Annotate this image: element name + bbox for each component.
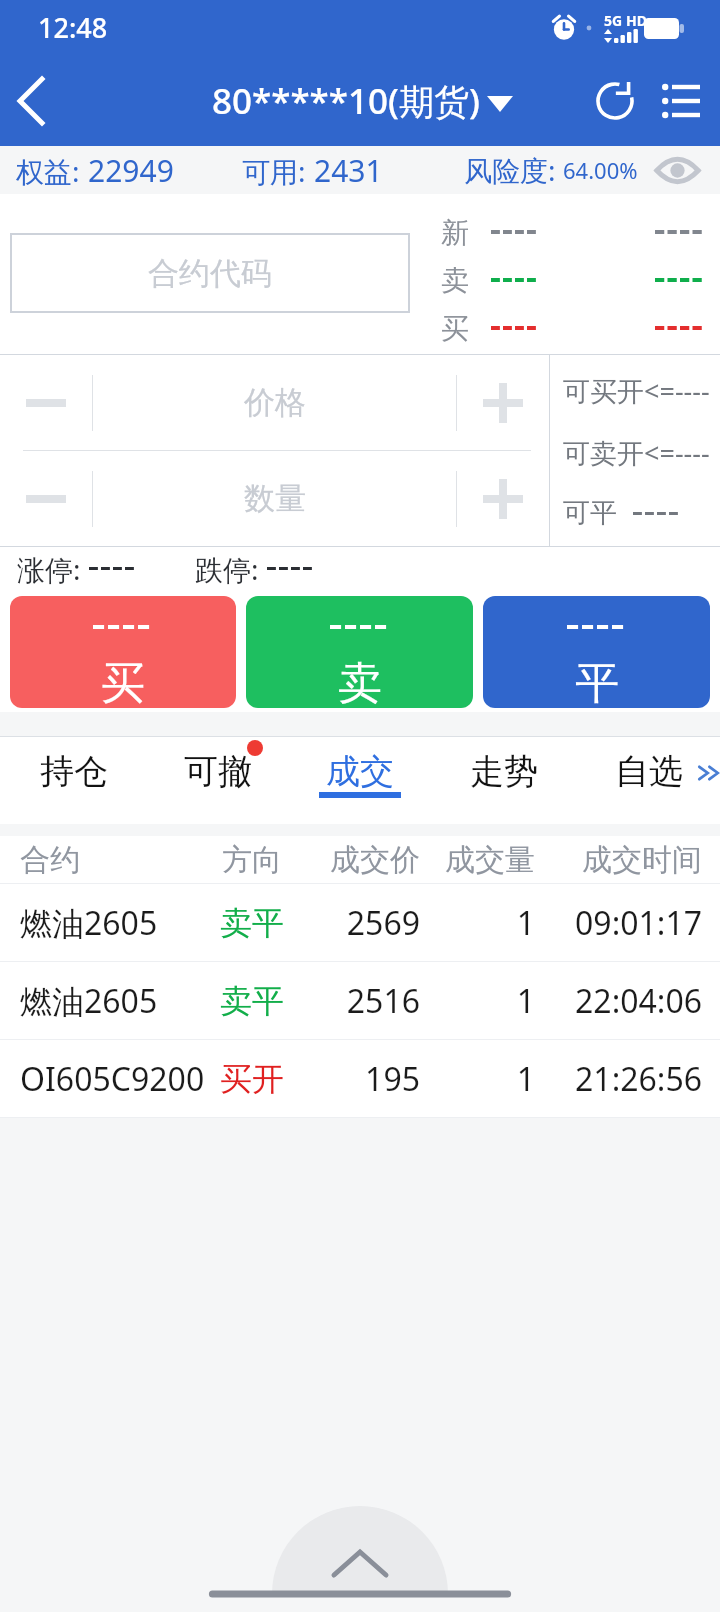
- staticText: 卖: [441, 263, 469, 298]
- staticText: HD: [626, 11, 647, 30]
- button[interactable]: More tabs: [698, 736, 720, 824]
- button[interactable]: 平: [483, 596, 710, 708]
- staticText: 80*****10(期货): [212, 77, 480, 125]
- staticText: 成交时间: [535, 841, 702, 879]
- staticText: 持仓: [40, 750, 108, 793]
- staticText: 卖平: [212, 903, 292, 943]
- staticText: 可平: [563, 496, 617, 530]
- button[interactable]: Decrease 价格: [0, 355, 92, 450]
- button[interactable]: 燃油2605: [0, 884, 720, 961]
- button[interactable]: Menu: [650, 56, 720, 146]
- button[interactable]: 成交: [288, 736, 432, 824]
- staticText: 195: [292, 1057, 420, 1101]
- staticText: 数量: [244, 479, 306, 518]
- staticText: 燃油2605: [20, 901, 212, 945]
- button[interactable]: 燃油2605: [0, 962, 720, 1039]
- button[interactable]: Back: [0, 56, 64, 146]
- button[interactable]: Decrease 数量: [0, 451, 92, 546]
- staticText: 平: [575, 656, 619, 708]
- staticText: 买开: [212, 1059, 292, 1099]
- staticText: 买: [441, 311, 469, 346]
- staticText: 权益:: [16, 152, 80, 190]
- staticText: 2516: [292, 979, 420, 1023]
- staticText: 21:26:56: [535, 1057, 702, 1101]
- staticText: 可撤: [184, 750, 252, 793]
- staticText: 12:48: [38, 9, 108, 46]
- button[interactable]: 合约代码: [10, 233, 410, 313]
- staticText: 价格: [244, 383, 306, 422]
- staticText: 买: [101, 656, 145, 708]
- staticText: 涨停:: [17, 550, 81, 588]
- staticText: 跌停:: [195, 550, 259, 588]
- staticText: 合约代码: [148, 254, 272, 293]
- button[interactable]: 数量: [93, 451, 456, 546]
- button[interactable]: 自选: [577, 736, 720, 824]
- button[interactable]: Increase 价格: [457, 355, 549, 450]
- staticText: 风险度:: [464, 151, 556, 189]
- button[interactable]: 卖: [246, 596, 473, 708]
- staticText: 22949: [88, 150, 174, 191]
- staticText: 09:01:17: [535, 901, 702, 945]
- button[interactable]: 走势: [432, 736, 576, 824]
- button[interactable]: Refresh: [578, 56, 650, 146]
- staticText: 卖: [338, 656, 382, 708]
- staticText: 走势: [470, 750, 538, 793]
- button[interactable]: 价格: [93, 355, 456, 450]
- staticText: 2431: [314, 150, 383, 191]
- staticText: 方向: [212, 841, 292, 879]
- button[interactable]: Toggle balance visibility: [649, 146, 705, 194]
- staticText: 新: [441, 215, 469, 250]
- staticText: 合约: [20, 841, 212, 879]
- staticText: 2569: [292, 901, 420, 945]
- staticText: 燃油2605: [20, 979, 212, 1023]
- staticText: 可卖开<=----: [563, 434, 710, 471]
- staticText: 卖平: [212, 981, 292, 1021]
- button[interactable]: 持仓: [2, 736, 146, 824]
- staticText: 22:04:06: [535, 979, 702, 1023]
- staticText: 1: [420, 901, 535, 945]
- staticText: 5G: [604, 11, 623, 30]
- staticText: 成交: [326, 750, 394, 793]
- staticText: OI605C9200: [20, 1057, 212, 1101]
- button[interactable]: Increase 数量: [457, 451, 549, 546]
- button[interactable]: 可撤: [146, 736, 290, 824]
- button[interactable]: 买: [10, 596, 236, 708]
- button[interactable]: OI605C9200: [0, 1040, 720, 1117]
- staticText: 1: [420, 1057, 535, 1101]
- staticText: 自选: [615, 750, 683, 793]
- staticText: 1: [420, 979, 535, 1023]
- staticText: 可用:: [242, 152, 306, 190]
- staticText: 成交量: [420, 841, 535, 879]
- staticText: 可买开<=----: [563, 372, 710, 409]
- staticText: 成交价: [292, 841, 420, 879]
- staticText: 64.00%: [563, 155, 638, 185]
